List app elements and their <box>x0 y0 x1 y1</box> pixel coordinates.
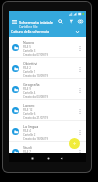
staticText: Cartelle 6 <box>23 112 36 116</box>
staticText: Cartelle 5 <box>23 154 36 158</box>
button[interactable]: Options <box>76 86 84 94</box>
staticText: Nuovo <box>23 40 35 45</box>
staticText: Lavoro <box>23 103 35 108</box>
button[interactable]: Search <box>56 17 65 26</box>
staticText: FILE 5 <box>23 45 31 49</box>
staticText: FILE 12 <box>23 108 33 112</box>
staticText: Creato da 21/07/19 <box>23 116 49 120</box>
button[interactable]: Nuovo <box>9 37 86 58</box>
staticText: Cartelle 2 <box>23 133 36 137</box>
staticText: Cartelle e file <box>19 25 38 29</box>
button[interactable]: Studi <box>9 142 86 162</box>
staticText: FILE 7 <box>23 150 31 154</box>
button[interactable]: Back <box>57 154 66 163</box>
button[interactable]: Options <box>76 65 84 73</box>
staticText: Creato da 01/05/19 <box>23 158 49 162</box>
button[interactable]: Home <box>44 154 53 163</box>
staticText: Cartelle 4 <box>23 91 36 95</box>
button[interactable]: Lavoro <box>9 100 86 121</box>
button[interactable]: Recents <box>28 154 37 163</box>
staticText: Obiettivi <box>23 61 38 66</box>
staticText: Creato da 18/06/19 <box>23 137 49 141</box>
staticText: Cartelle 1 <box>23 70 36 74</box>
staticText: FILE 9 <box>23 87 31 91</box>
button[interactable]: Options <box>76 128 84 136</box>
staticText: Studi <box>23 145 32 150</box>
button[interactable]: Add <box>69 138 80 149</box>
button[interactable]: Options <box>76 148 84 156</box>
button[interactable]: Filter <box>67 17 76 26</box>
staticText: Creato da 10/09/19 <box>23 74 49 78</box>
staticText: Cattura della schermata <box>11 29 50 34</box>
staticText: Schermata iniziale <box>19 20 53 25</box>
staticText: Cartelle 3 <box>23 49 36 53</box>
staticText: La lingua <box>23 124 39 129</box>
staticText: Geografia <box>23 82 40 87</box>
button[interactable]: Obiettivi <box>9 58 86 79</box>
button[interactable]: More options <box>76 17 85 26</box>
button[interactable]: Options <box>76 44 84 52</box>
staticText: Creato da 03/08/19 <box>23 95 49 99</box>
staticText: FILE 2 <box>23 66 31 70</box>
button[interactable]: Menu <box>11 18 18 25</box>
button[interactable]: Expand <box>73 27 82 36</box>
button[interactable]: La lingua <box>9 121 86 142</box>
button[interactable]: Geografia <box>9 79 86 100</box>
staticText: Creato da 07/09/19 <box>23 53 49 57</box>
staticText: FILE 4 <box>23 129 31 133</box>
button[interactable]: Options <box>76 107 84 115</box>
